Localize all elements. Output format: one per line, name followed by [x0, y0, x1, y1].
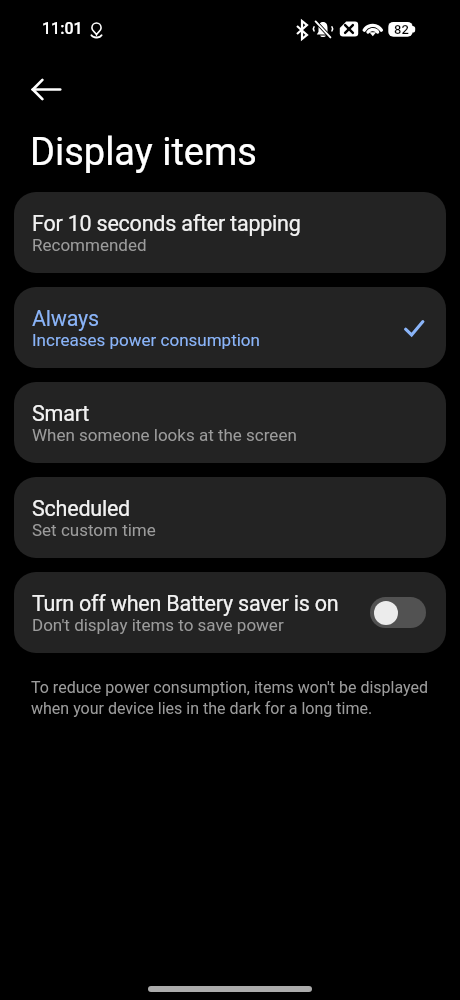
staticText: Don't display items to save power: [32, 615, 284, 635]
staticText: Smart: [32, 401, 90, 426]
staticText: 11:01: [42, 19, 83, 38]
button[interactable]: Always: [14, 287, 446, 368]
button[interactable]: Turn off when Battery saver is on: [370, 597, 426, 628]
staticText: Display items: [30, 130, 257, 175]
staticText: Set custom time: [32, 520, 156, 540]
staticText: To reduce power consumption, items won't…: [31, 678, 431, 718]
button[interactable]: For 10 seconds after tapping: [14, 192, 446, 273]
button[interactable]: Smart: [14, 382, 446, 463]
button[interactable]: Turn off when Battery saver is on: [14, 572, 446, 653]
staticText: Always: [32, 306, 99, 331]
staticText: Increases power consumption: [32, 330, 260, 350]
staticText: Turn off when Battery saver is on: [32, 591, 339, 616]
button[interactable]: Navigate up: [25, 68, 68, 111]
button[interactable]: Scheduled: [14, 477, 446, 558]
staticText: When someone looks at the screen: [32, 425, 297, 445]
staticText: For 10 seconds after tapping: [32, 211, 301, 236]
staticText: Recommended: [32, 235, 147, 255]
staticText: 82: [394, 22, 409, 37]
staticText: Scheduled: [32, 496, 131, 521]
